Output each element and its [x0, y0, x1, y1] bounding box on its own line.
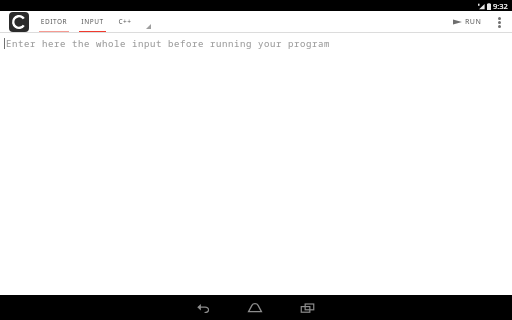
button[interactable]: More options: [490, 13, 508, 31]
staticText: RUN: [465, 17, 482, 27]
staticText: 9:32: [493, 1, 508, 11]
button[interactable]: RUN: [449, 14, 486, 30]
button[interactable]: C++: [116, 11, 134, 33]
staticText: Enter here the whole input before runnin…: [6, 37, 331, 49]
button[interactable]: INPUT: [79, 11, 106, 33]
button[interactable]: Enter here the whole input before runnin…: [0, 33, 512, 295]
button[interactable]: Back: [190, 295, 216, 320]
staticText: C++: [116, 17, 134, 26]
button[interactable]: Recent apps: [294, 295, 320, 320]
button[interactable]: Home: [242, 295, 268, 320]
staticText: EDITOR: [39, 17, 69, 26]
button[interactable]: EDITOR: [39, 11, 69, 33]
button[interactable]: App logo: [9, 12, 29, 32]
staticText: INPUT: [79, 17, 106, 26]
